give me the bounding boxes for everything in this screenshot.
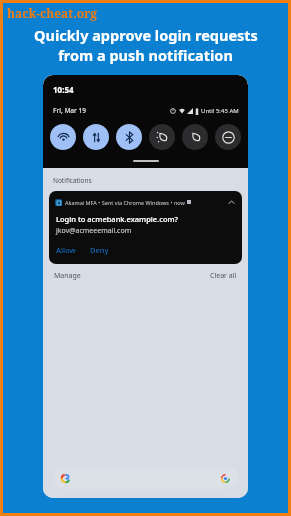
staticText: Deny — [90, 245, 109, 255]
staticText: 10:54 — [53, 84, 74, 95]
staticText: Clear all — [210, 271, 237, 281]
staticText: Quickly approve login requests — [34, 25, 258, 45]
staticText: Fri, Mar 19 — [53, 106, 86, 115]
staticText: hack-cheat.org — [7, 5, 98, 21]
button[interactable]: Collapse — [226, 197, 236, 207]
staticText: Notifications — [53, 176, 92, 185]
button[interactable]: Quick setting toggle — [116, 124, 142, 150]
button[interactable]: Search — [53, 467, 238, 489]
staticText: Akamai MFA • Sent via Chrome Windows • n… — [65, 199, 185, 206]
button[interactable]: Akamai MFA • Sent via Chrome Windows • n… — [49, 191, 242, 264]
button[interactable]: Manage — [54, 271, 81, 281]
button[interactable]: Clear all — [210, 271, 237, 281]
button[interactable]: Quick setting toggle — [215, 124, 241, 150]
button[interactable]: Allow — [56, 245, 76, 255]
button[interactable]: Deny — [90, 245, 109, 255]
button[interactable]: Quick setting toggle — [182, 124, 208, 150]
button[interactable]: Quick setting toggle — [83, 124, 109, 150]
button[interactable]: Quick setting toggle — [50, 124, 76, 150]
staticText: Allow — [56, 245, 76, 255]
staticText: Manage — [54, 271, 81, 281]
staticText: Login to acmebank.example.com? — [56, 214, 178, 224]
button[interactable]: Quick setting toggle — [149, 124, 175, 150]
staticText: from a push notification — [58, 45, 233, 65]
staticText: jkov@acmeeemail.com — [56, 226, 132, 236]
staticText: Until 5:45 AM — [201, 107, 239, 115]
